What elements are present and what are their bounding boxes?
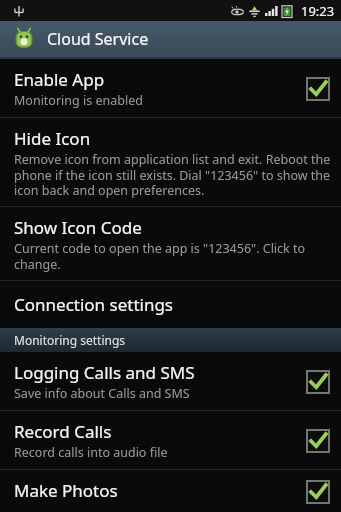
staticText: Record calls into audio file — [14, 444, 168, 461]
button[interactable]: Connection settings — [0, 281, 341, 328]
button[interactable]: Record Calls — [0, 411, 341, 469]
staticText: 19:23 — [301, 2, 335, 20]
button[interactable]: Toggle setting — [305, 369, 331, 395]
button[interactable]: Make Photos — [0, 470, 341, 512]
staticText: Enable App — [14, 68, 105, 91]
button[interactable]: Hide Icon — [0, 118, 341, 206]
button[interactable]: Toggle setting — [305, 76, 331, 102]
staticText: Remove icon from application list and ex… — [14, 151, 331, 198]
staticText: Record Calls — [14, 420, 112, 443]
button[interactable]: Toggle setting — [305, 428, 331, 454]
staticText: Connection settings — [14, 293, 174, 316]
button[interactable]: Enable App — [0, 59, 341, 117]
staticText: Monitoring is enabled — [14, 92, 143, 109]
staticText: Cloud Service — [47, 28, 149, 50]
button[interactable]: Logging Calls and SMS — [0, 352, 341, 410]
staticText: Make Photos — [14, 479, 118, 502]
staticText: Hide Icon — [14, 127, 91, 150]
staticText: Save info about Calls and SMS — [14, 385, 190, 402]
button[interactable]: Show Icon Code — [0, 207, 341, 280]
staticText: Show Icon Code — [14, 216, 142, 239]
staticText: Monitoring settings — [14, 332, 126, 348]
staticText: Logging Calls and SMS — [14, 361, 195, 384]
button[interactable]: Toggle setting — [305, 479, 331, 504]
staticText: Current code to open the app is "123456"… — [14, 240, 331, 272]
button[interactable]: Cloud Service — [0, 21, 341, 57]
